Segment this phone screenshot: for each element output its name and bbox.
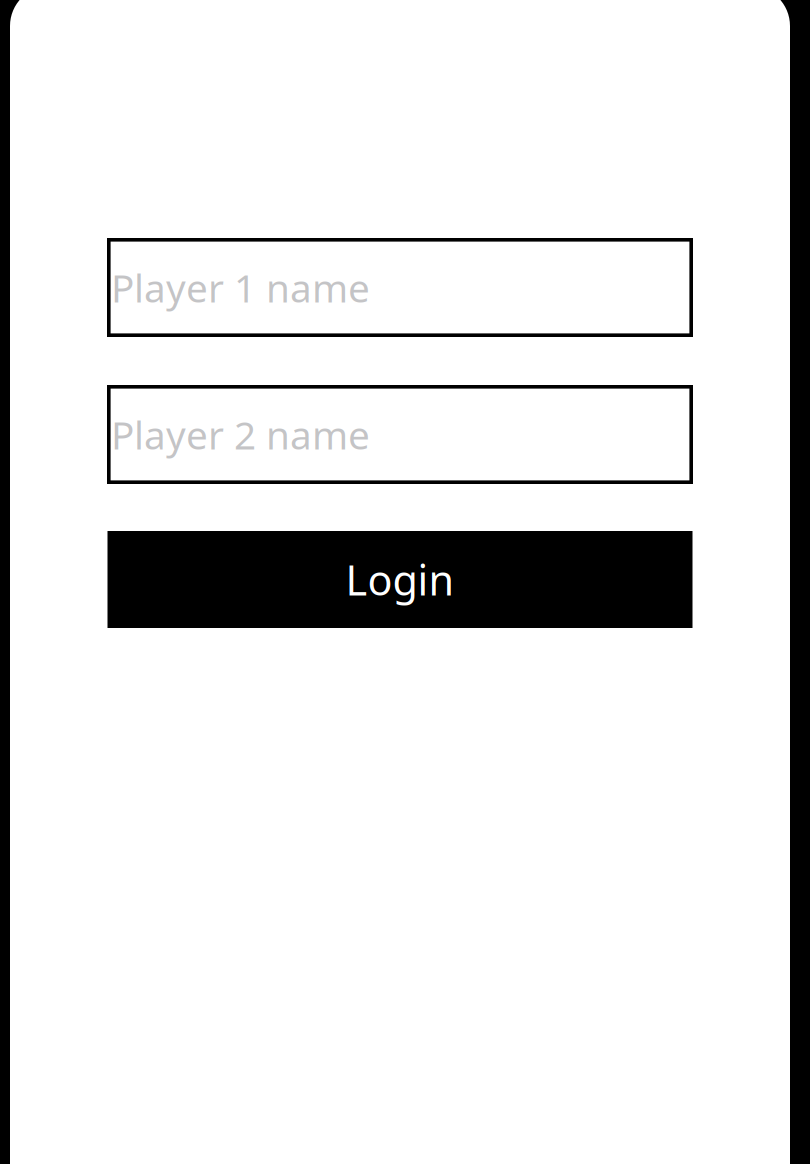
button[interactable]: Player 2 name (107, 385, 693, 484)
staticText: Login (345, 552, 454, 607)
button[interactable]: Login (107, 531, 692, 628)
button[interactable]: Player 1 name (107, 238, 693, 337)
staticText: Player 2 name (111, 409, 370, 460)
staticText: Player 1 name (111, 262, 370, 313)
